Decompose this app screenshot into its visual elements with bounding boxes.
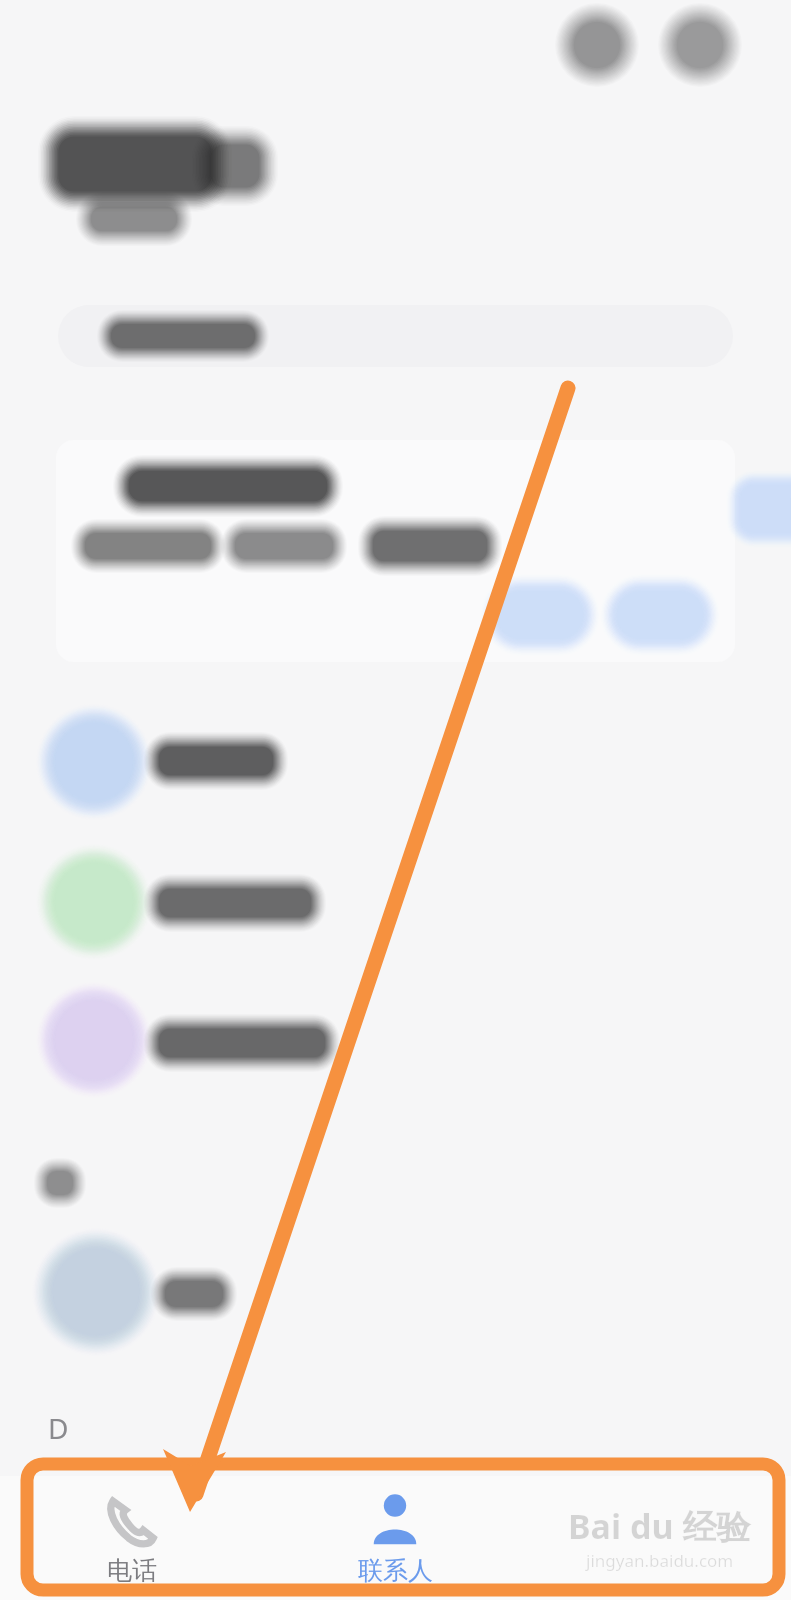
staticText: 电话 [107,1555,157,1586]
button[interactable]: Tab [527,1476,791,1600]
button[interactable]: 电话 [0,1476,263,1600]
staticText: jingyan.baidu.com [586,1549,734,1572]
staticText: D [48,1409,69,1447]
staticText: 联系人 [358,1555,433,1586]
button[interactable]: 联系人 [263,1476,527,1600]
staticText: Bai du 经验 [568,1503,751,1549]
